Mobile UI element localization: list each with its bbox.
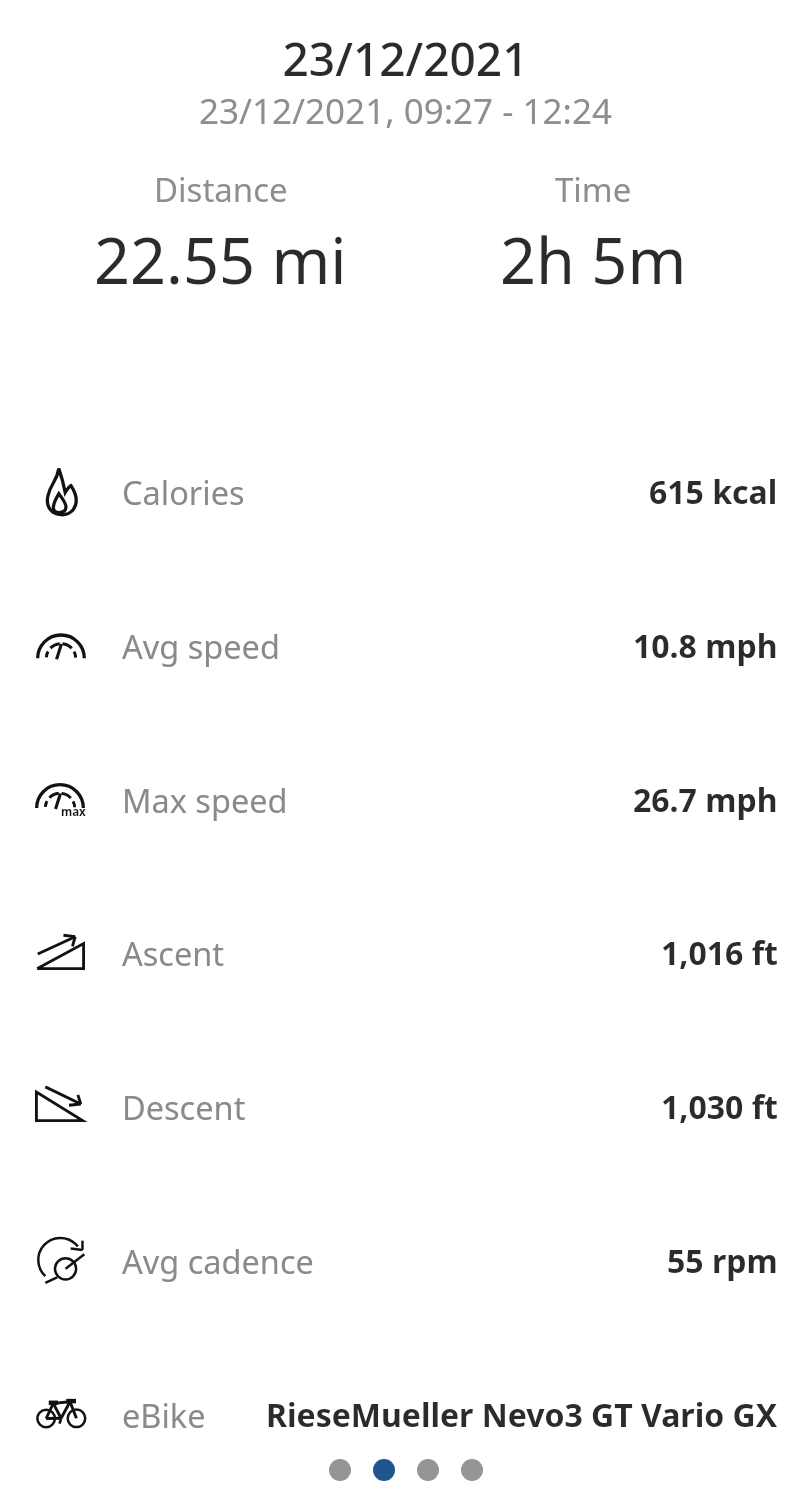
staticText: 2h 5m — [500, 217, 687, 303]
staticText: Avg cadence — [122, 1239, 314, 1283]
staticText: 1,030 ft — [661, 1085, 778, 1129]
staticText: Time — [555, 167, 632, 212]
other: Avg cadence — [36, 1230, 86, 1292]
button[interactable]: Avg speed — [0, 569, 811, 723]
staticText: Descent — [122, 1085, 246, 1129]
button[interactable]: Max speed — [0, 723, 811, 877]
other: Calories — [36, 461, 86, 523]
staticText: Calories — [122, 470, 245, 514]
staticText: Max speed — [122, 778, 288, 822]
button[interactable]: Descent — [0, 1030, 811, 1184]
other: Avg speed — [36, 615, 86, 677]
other: Max speed — [36, 769, 86, 831]
button[interactable]: Page 2 — [373, 1459, 395, 1481]
staticText: eBike — [122, 1393, 206, 1437]
button[interactable]: Calories — [0, 415, 811, 569]
button[interactable]: Page 1 — [329, 1459, 351, 1481]
button[interactable]: Page 4 — [461, 1459, 483, 1481]
staticText: Distance — [154, 167, 288, 212]
staticText: 615 kcal — [649, 470, 778, 514]
other: Ascent — [36, 922, 86, 984]
staticText: Ascent — [122, 931, 225, 975]
staticText: 55 rpm — [667, 1239, 778, 1283]
staticText: 1,016 ft — [661, 931, 778, 975]
button[interactable]: eBike — [0, 1338, 811, 1492]
staticText: 23/12/2021, 09:27 - 12:24 — [0, 87, 811, 135]
staticText: Avg speed — [122, 624, 280, 668]
button[interactable]: Ascent — [0, 876, 811, 1030]
staticText: max — [61, 804, 86, 820]
other: eBike — [36, 1384, 86, 1446]
staticText: 10.8 mph — [633, 624, 778, 668]
button[interactable]: Page 3 — [417, 1459, 439, 1481]
staticText: 23/12/2021 — [0, 27, 811, 90]
button[interactable]: Avg cadence — [0, 1184, 811, 1338]
staticText: 26.7 mph — [633, 778, 778, 822]
staticText: 22.55 mi — [94, 217, 347, 303]
staticText: RieseMueller Nevo3 GT Vario GX — [266, 1393, 778, 1437]
other: Descent — [36, 1076, 86, 1138]
